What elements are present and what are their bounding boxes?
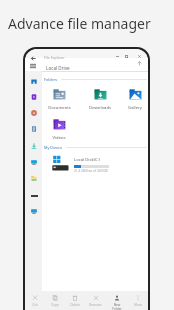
button[interactable]: Rename xyxy=(85,291,106,307)
button[interactable]: Shortcut xyxy=(30,109,38,117)
button[interactable]: Minimize xyxy=(114,53,120,59)
button[interactable]: More xyxy=(127,291,148,307)
staticText: Copy xyxy=(51,303,59,307)
button[interactable]: Gallery xyxy=(118,87,148,113)
button[interactable]: Up one level xyxy=(136,60,143,67)
button[interactable]: Shortcut xyxy=(30,142,38,150)
button[interactable]: Back xyxy=(29,54,37,62)
staticText: Gallery xyxy=(128,105,142,111)
staticText: Documents xyxy=(48,105,71,111)
button[interactable]: Shortcut xyxy=(30,158,38,166)
button[interactable]: Shortcut xyxy=(30,93,38,101)
button[interactable]: Documents xyxy=(42,87,76,113)
button[interactable]: Shortcut xyxy=(30,174,38,182)
staticText: More xyxy=(134,303,142,307)
staticText: Videos xyxy=(52,135,66,141)
staticText: Local Drive xyxy=(46,65,70,71)
button[interactable]: Copy xyxy=(45,291,65,307)
staticText: File Explorer xyxy=(44,55,65,60)
staticText: 21.4 GB free of 243 GB xyxy=(74,169,108,173)
button[interactable]: Videos xyxy=(42,117,76,143)
button[interactable]: Local Disk C xyxy=(52,155,69,172)
button[interactable]: New Folder xyxy=(106,291,127,310)
button[interactable]: Downloads xyxy=(83,87,117,113)
button[interactable]: Shortcut xyxy=(30,207,38,215)
staticText: Rename xyxy=(89,303,102,307)
staticText: Cut xyxy=(32,303,38,307)
staticText: Advance file manager xyxy=(8,14,151,33)
button[interactable]: Shortcut xyxy=(30,77,38,85)
staticText: New Folder xyxy=(112,303,122,310)
staticText: My Device xyxy=(44,145,63,150)
button[interactable]: Menu xyxy=(29,62,37,70)
button[interactable]: Cut xyxy=(25,291,45,307)
button[interactable]: Maximize xyxy=(123,53,129,59)
staticText: Folders xyxy=(44,77,58,82)
button[interactable]: Close xyxy=(136,53,142,59)
button[interactable]: Shortcut xyxy=(30,125,38,133)
staticText: Local Disk(C:) xyxy=(74,157,100,163)
button[interactable]: Delete xyxy=(65,291,85,307)
staticText: Downloads xyxy=(89,105,111,111)
staticText: Delete xyxy=(70,303,80,307)
